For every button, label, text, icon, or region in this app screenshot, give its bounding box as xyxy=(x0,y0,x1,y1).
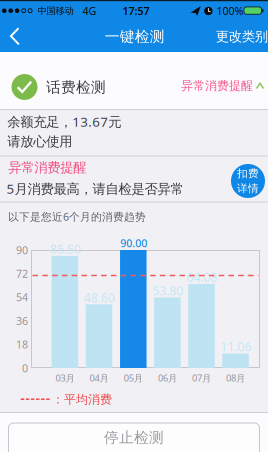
staticText: 一键检测 xyxy=(105,27,165,45)
staticText: 08月 xyxy=(226,372,245,384)
staticText: 72 xyxy=(16,266,28,281)
staticText: 停止检测 xyxy=(104,428,164,446)
staticText: 36 xyxy=(16,314,28,328)
staticText: 17:57 xyxy=(122,4,149,18)
staticText: 以下是您近6个月的消费趋势 xyxy=(8,209,146,224)
button[interactable]: 停止检测 xyxy=(8,423,259,452)
staticText: 更改类别 xyxy=(216,28,268,45)
staticText: 53.80 xyxy=(152,283,183,299)
staticText: 5月消费最高，请自检是否异常 xyxy=(7,180,184,197)
staticText: 余额充足，13.67元 xyxy=(7,113,121,130)
staticText: 异常消费提醒 xyxy=(181,78,253,93)
staticText: 05月 xyxy=(124,372,143,384)
staticText: 100% xyxy=(216,4,243,18)
staticText: 4G xyxy=(82,4,96,18)
button[interactable]: 扣费 xyxy=(231,164,265,198)
staticText: 90 xyxy=(16,243,28,257)
staticText: 90.00 xyxy=(120,236,147,250)
staticText: 请放心使用 xyxy=(7,133,72,150)
staticText: 话费检测 xyxy=(46,78,106,96)
staticText: 85.50 xyxy=(50,241,81,257)
staticText: ：平均消费 xyxy=(52,392,112,407)
button[interactable]: 异常消费提醒 xyxy=(181,78,264,93)
staticText: 18 xyxy=(16,337,28,351)
button[interactable]: 返回 xyxy=(10,28,19,45)
button[interactable]: 更改类别 xyxy=(216,28,268,45)
staticText: 扣费 xyxy=(237,167,259,180)
staticText: 48.60 xyxy=(84,289,115,305)
staticText: 中国移动 xyxy=(37,5,73,17)
staticText: 11.06 xyxy=(220,339,251,355)
staticText: 0 xyxy=(22,361,28,375)
staticText: 异常消费提醒 xyxy=(8,159,86,176)
staticText: 06月 xyxy=(158,372,177,384)
staticText: 详情 xyxy=(237,182,259,195)
staticText: 04月 xyxy=(89,372,108,384)
staticText: 64.08 xyxy=(186,269,217,285)
staticText: 03月 xyxy=(55,372,74,384)
staticText: 07月 xyxy=(192,372,211,384)
staticText: 54 xyxy=(16,290,28,304)
